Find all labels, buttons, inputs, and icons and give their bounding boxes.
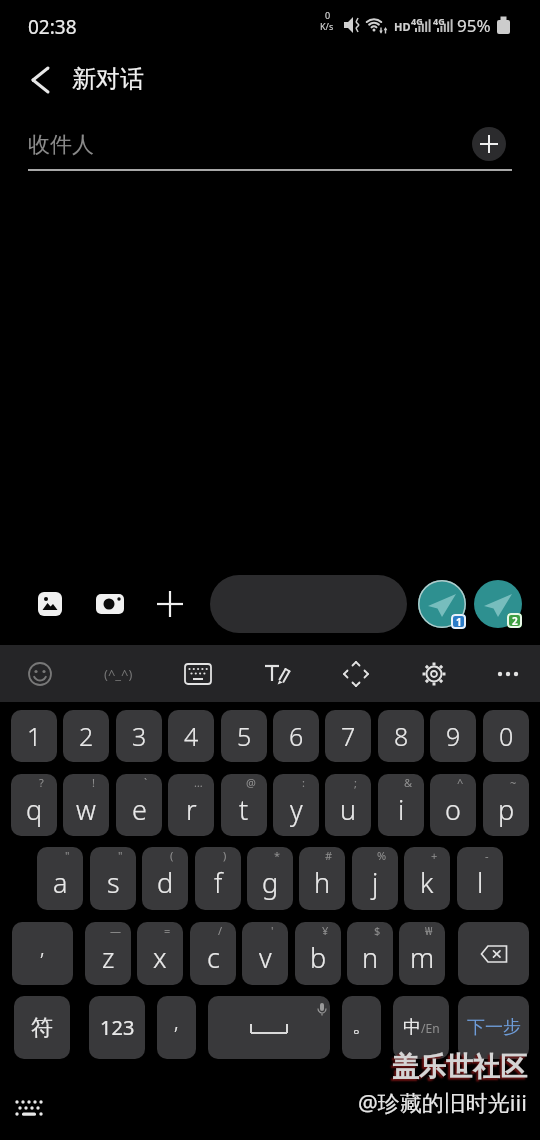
- button[interactable]: j: [352, 847, 398, 910]
- staticText: +: [431, 848, 438, 863]
- button[interactable]: 3: [116, 710, 162, 762]
- staticText: @: [246, 775, 256, 790]
- staticText: 盖乐世社区: [392, 1050, 527, 1084]
- button[interactable]: o: [430, 774, 476, 836]
- button[interactable]: [174, 650, 222, 698]
- staticText: 6: [289, 719, 304, 753]
- button[interactable]: [332, 650, 380, 698]
- button[interactable]: [458, 922, 529, 985]
- button[interactable]: [253, 650, 301, 698]
- staticText: z: [102, 939, 115, 976]
- staticText: ,: [40, 934, 45, 961]
- button[interactable]: 。: [342, 996, 381, 1059]
- staticText: 9: [446, 719, 461, 753]
- staticText: 4G: [411, 15, 423, 27]
- staticText: w: [76, 791, 96, 828]
- button[interactable]: h: [299, 847, 345, 910]
- staticText: ,: [174, 1008, 179, 1035]
- button[interactable]: ,: [12, 922, 73, 985]
- staticText: ): [223, 848, 227, 863]
- button[interactable]: l: [457, 847, 503, 910]
- button[interactable]: 2: [63, 710, 109, 762]
- staticText: 5: [237, 719, 252, 753]
- button[interactable]: [410, 650, 458, 698]
- button[interactable]: m: [399, 922, 445, 985]
- button[interactable]: 符: [14, 996, 70, 1059]
- button[interactable]: [474, 580, 522, 628]
- button[interactable]: u: [325, 774, 371, 836]
- staticText: n: [362, 939, 379, 976]
- button[interactable]: d: [142, 847, 188, 910]
- button[interactable]: x: [137, 922, 183, 985]
- staticText: 1: [27, 719, 42, 753]
- button[interactable]: [16, 650, 64, 698]
- staticText: 收件人: [28, 131, 94, 159]
- button[interactable]: 中/En: [393, 996, 449, 1059]
- button[interactable]: 1: [11, 710, 57, 762]
- button[interactable]: 下一步: [458, 996, 529, 1059]
- button[interactable]: (^_^): [88, 650, 148, 698]
- button[interactable]: y: [273, 774, 319, 836]
- staticText: t: [239, 791, 249, 828]
- staticText: 02:38: [28, 14, 77, 40]
- staticText: -: [485, 848, 489, 863]
- staticText: 符: [31, 1014, 53, 1042]
- button[interactable]: k: [404, 847, 450, 910]
- staticText: k: [420, 864, 434, 901]
- button[interactable]: ,: [157, 996, 196, 1059]
- button[interactable]: [150, 584, 190, 624]
- button[interactable]: f: [195, 847, 241, 910]
- staticText: `: [144, 775, 148, 790]
- button[interactable]: s: [90, 847, 136, 910]
- button[interactable]: i: [378, 774, 424, 836]
- staticText: ;: [354, 775, 357, 790]
- button[interactable]: g: [247, 847, 293, 910]
- button[interactable]: p: [483, 774, 529, 836]
- button[interactable]: e: [116, 774, 162, 836]
- staticText: a: [53, 864, 68, 901]
- staticText: 下一步: [467, 1016, 521, 1039]
- button[interactable]: 4: [168, 710, 214, 762]
- staticText: d: [157, 864, 174, 901]
- button[interactable]: t: [221, 774, 267, 836]
- staticText: —: [110, 923, 121, 938]
- staticText: p: [498, 791, 515, 828]
- button[interactable]: 6: [273, 710, 319, 762]
- button[interactable]: b: [295, 922, 341, 985]
- button[interactable]: 9: [430, 710, 476, 762]
- button[interactable]: 7: [325, 710, 371, 762]
- staticText: 新对话: [72, 64, 144, 94]
- button[interactable]: 0: [483, 710, 529, 762]
- staticText: r: [186, 791, 197, 828]
- button[interactable]: 8: [378, 710, 424, 762]
- button[interactable]: [484, 650, 532, 698]
- staticText: :: [302, 775, 305, 790]
- button[interactable]: [10, 1094, 50, 1124]
- button[interactable]: n: [347, 922, 393, 985]
- button[interactable]: 5: [221, 710, 267, 762]
- button[interactable]: [30, 584, 70, 624]
- staticText: b: [310, 939, 327, 976]
- button[interactable]: [210, 575, 407, 633]
- button[interactable]: 123: [89, 996, 145, 1059]
- button[interactable]: z: [85, 922, 131, 985]
- staticText: ¥: [322, 923, 329, 938]
- staticText: y: [290, 791, 303, 828]
- button[interactable]: [418, 580, 466, 628]
- button[interactable]: [18, 62, 58, 98]
- staticText: …: [194, 775, 203, 790]
- staticText: h: [314, 864, 331, 901]
- button[interactable]: [90, 584, 130, 624]
- button[interactable]: [208, 996, 330, 1059]
- button[interactable]: v: [242, 922, 288, 985]
- staticText: (: [170, 848, 174, 863]
- button[interactable]: a: [37, 847, 83, 910]
- button[interactable]: [472, 127, 506, 161]
- button[interactable]: w: [63, 774, 109, 836]
- button[interactable]: q: [11, 774, 57, 836]
- button[interactable]: r: [168, 774, 214, 836]
- staticText: j: [372, 864, 379, 901]
- staticText: 8: [394, 719, 409, 753]
- staticText: %: [377, 848, 387, 863]
- button[interactable]: c: [190, 922, 236, 985]
